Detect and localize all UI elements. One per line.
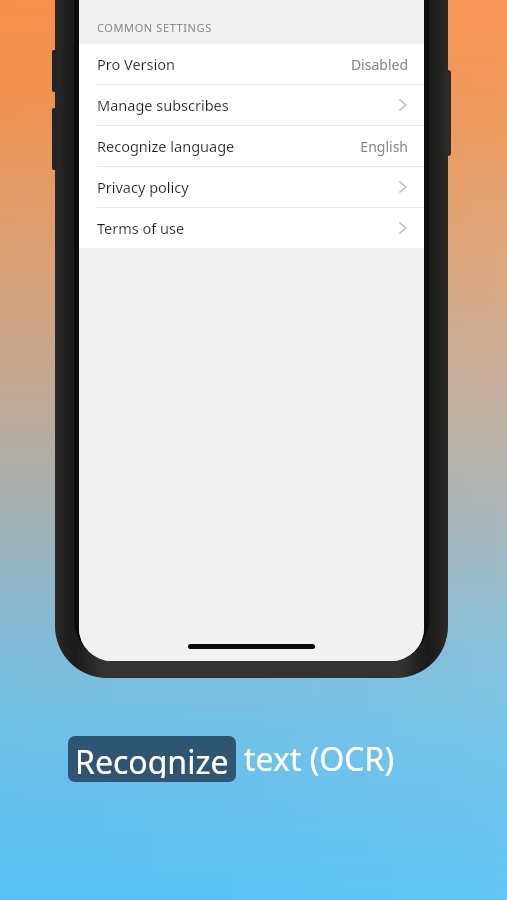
button[interactable]: Recognize language <box>79 126 424 166</box>
button[interactable]: Pro Version <box>79 44 424 84</box>
staticText: Terms of use <box>97 218 398 238</box>
staticText: text (OCR) <box>244 737 395 781</box>
staticText: Manage subscribes <box>97 95 398 115</box>
button[interactable]: Manage subscribes <box>79 85 424 125</box>
staticText: Pro Version <box>97 54 350 74</box>
button[interactable]: Privacy policy <box>79 167 424 207</box>
staticText: Recognize <box>75 740 229 778</box>
staticText: Disabled <box>350 55 408 74</box>
staticText: Privacy policy <box>97 177 398 197</box>
staticText: English <box>360 137 408 156</box>
button[interactable]: Terms of use <box>79 208 424 248</box>
staticText: COMMON SETTINGS <box>97 20 212 35</box>
staticText: Recognize language <box>97 136 360 156</box>
